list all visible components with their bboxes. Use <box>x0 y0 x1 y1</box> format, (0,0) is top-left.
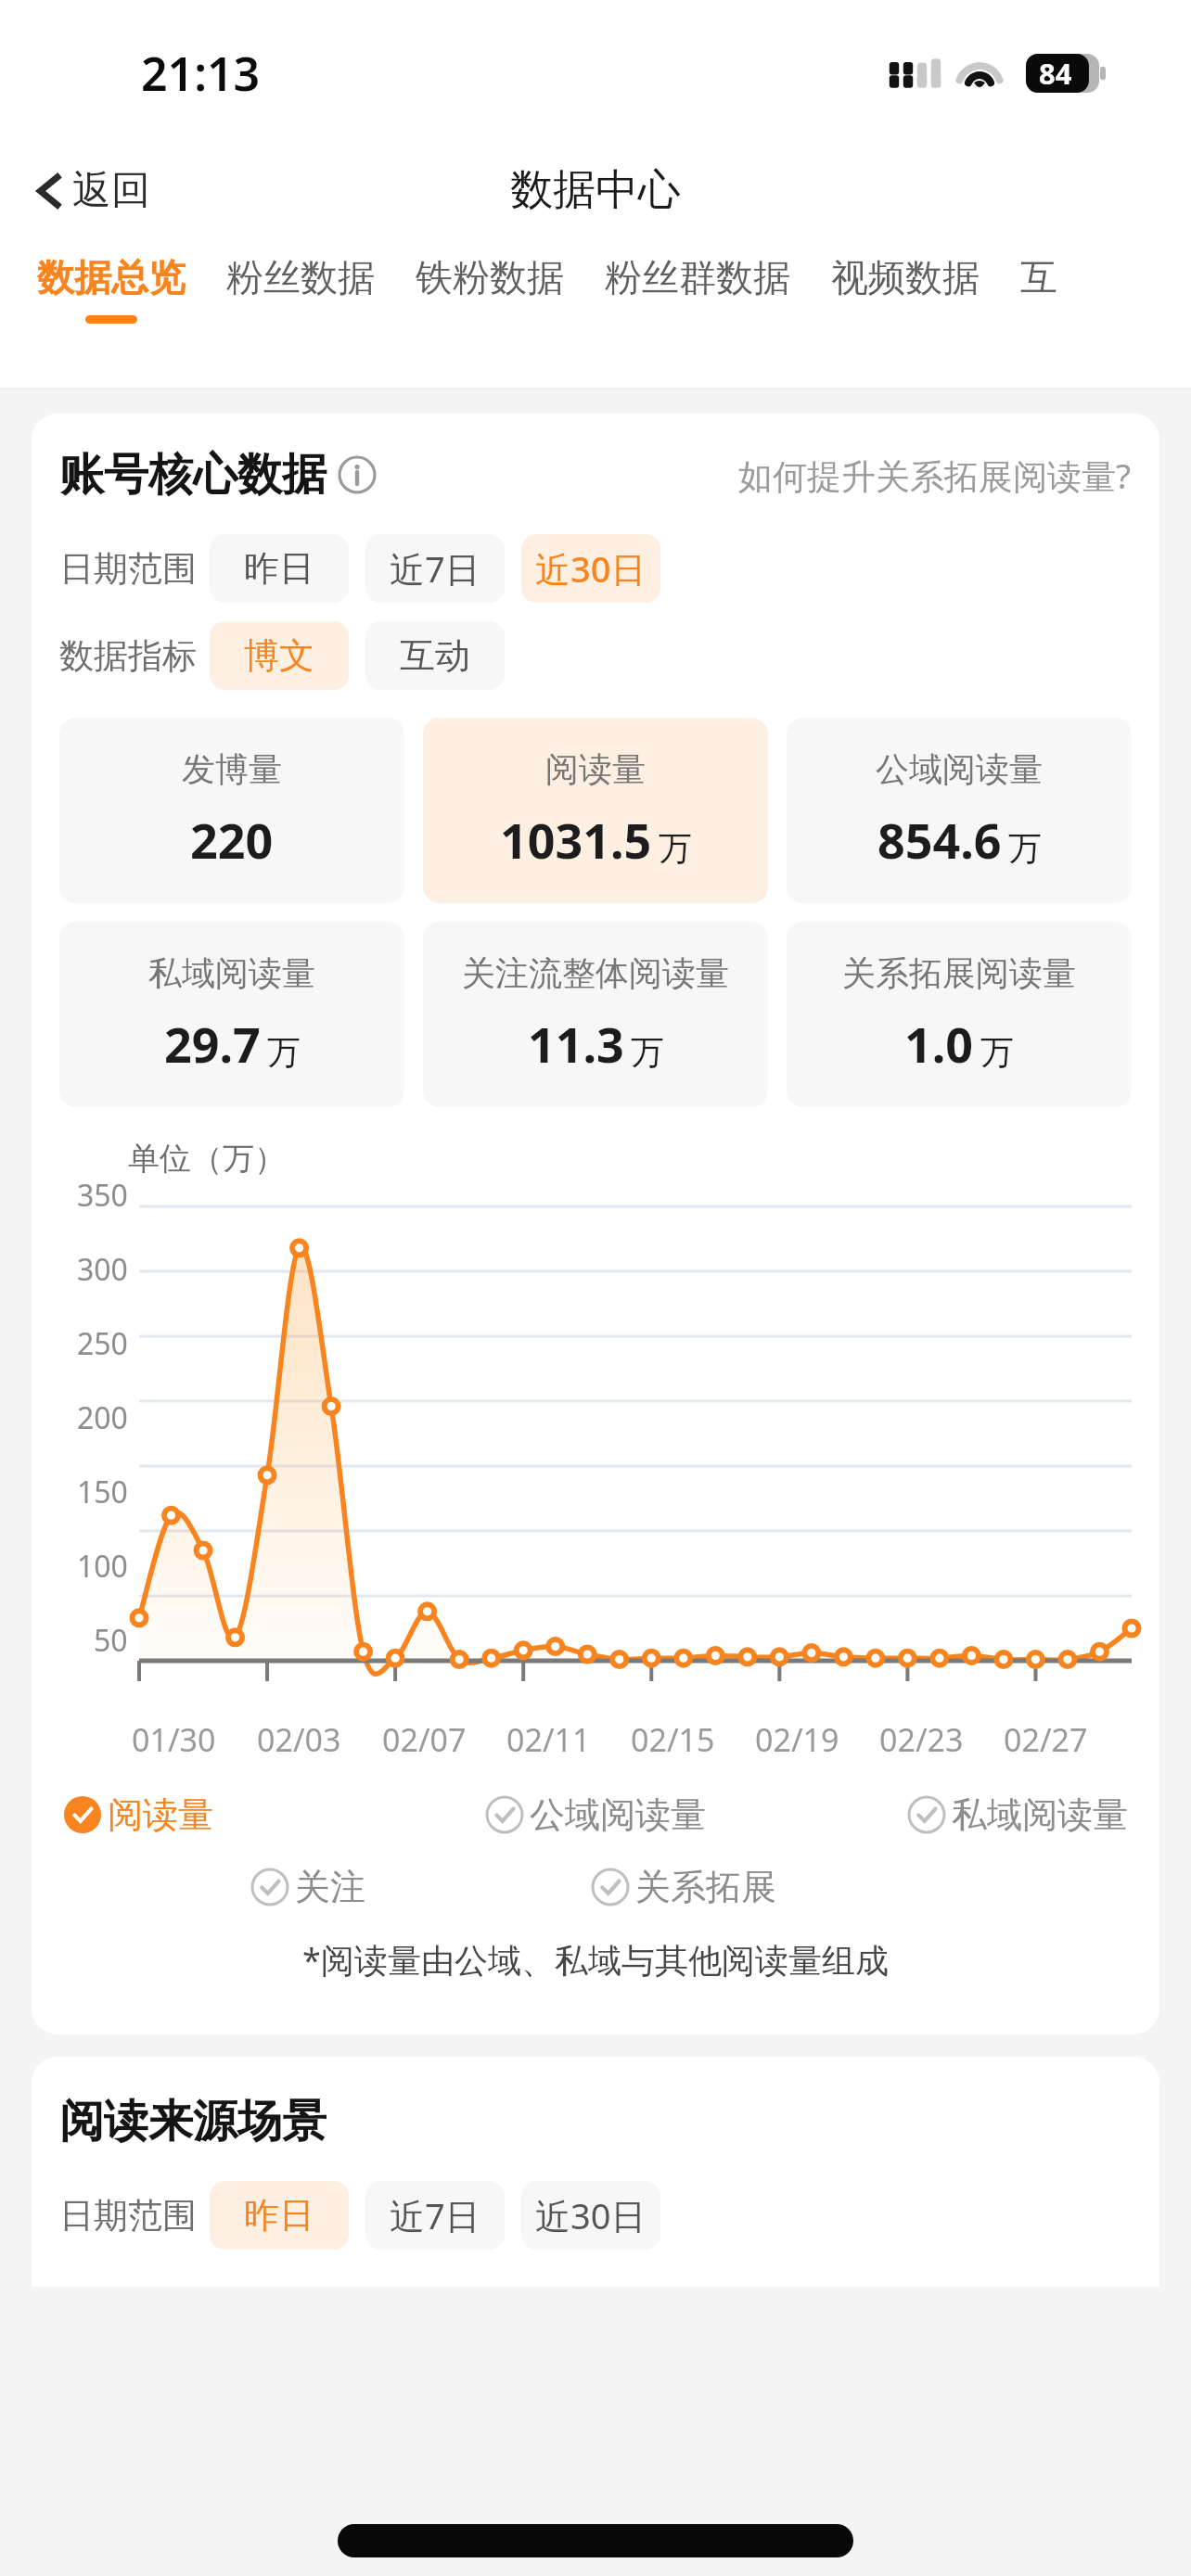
staticText: 关系拓展阅读量 <box>842 952 1076 994</box>
staticText: 1031.5 <box>500 807 652 873</box>
staticText: 单位（万） <box>128 1139 286 1179</box>
button[interactable]: 近7日 <box>365 534 505 603</box>
staticText: 21:13 <box>141 42 261 105</box>
staticText: 私域阅读量 <box>148 952 315 994</box>
button[interactable]: 近7日 <box>365 2181 505 2250</box>
staticText: *阅读量由公域、私域与其他阅读量组成 <box>59 1937 1132 1983</box>
staticText: 粉丝数据 <box>226 254 375 300</box>
staticText: 11.3 <box>528 1011 624 1077</box>
button[interactable]: 粉丝群数据 <box>584 241 811 315</box>
button[interactable]: 粉丝数据 <box>206 241 395 315</box>
staticText: 昨日 <box>244 2193 314 2238</box>
staticText: 01/30 <box>132 1718 216 1761</box>
staticText: 数据总览 <box>37 254 186 300</box>
button[interactable]: 关系拓展 <box>587 1861 780 1913</box>
button[interactable]: 关系拓展阅读量 <box>787 922 1132 1107</box>
staticText: 250 <box>77 1323 128 1364</box>
staticText: 互 <box>1020 254 1057 300</box>
staticText: 返回 <box>72 166 150 215</box>
button[interactable]: 公域阅读量 <box>787 718 1132 903</box>
staticText: 关注 <box>295 1865 365 1909</box>
staticText: 万 <box>267 1031 301 1073</box>
staticText: 铁粉数据 <box>416 254 564 300</box>
staticText: 互动 <box>400 633 470 678</box>
staticText: 公域阅读量 <box>530 1792 706 1837</box>
staticText: 84 <box>1039 54 1072 93</box>
staticText: 私域阅读量 <box>952 1792 1128 1837</box>
staticText: 29.7 <box>164 1011 261 1077</box>
staticText: 日期范围 <box>59 547 197 591</box>
staticText: 关注流整体阅读量 <box>462 952 729 994</box>
button[interactable]: 铁粉数据 <box>395 241 584 315</box>
staticText: 阅读来源场景 <box>59 2094 327 2149</box>
button[interactable]: 近30日 <box>521 2181 660 2250</box>
staticText: 02/07 <box>382 1718 467 1761</box>
staticText: 阅读量 <box>108 1792 213 1837</box>
staticText: 日期范围 <box>59 2194 197 2238</box>
staticText: 近7日 <box>390 2191 480 2239</box>
staticText: 350 <box>77 1175 128 1216</box>
button[interactable]: 博文 <box>210 621 349 690</box>
other: 说明 <box>338 455 377 494</box>
button[interactable]: 如何提升关系拓展阅读量? <box>738 452 1132 499</box>
staticText: 万 <box>980 1031 1014 1073</box>
button[interactable]: 近30日 <box>521 534 660 603</box>
staticText: 02/03 <box>257 1718 341 1761</box>
staticText: 数据中心 <box>510 163 681 217</box>
staticText: 博文 <box>244 633 314 678</box>
staticText: 粉丝群数据 <box>605 254 790 300</box>
staticText: 近7日 <box>390 544 480 593</box>
button[interactable]: 私域阅读量 <box>59 922 404 1107</box>
staticText: 02/11 <box>506 1718 591 1761</box>
button[interactable]: 昨日 <box>210 534 349 603</box>
button[interactable]: 阅读量 <box>59 1789 217 1841</box>
button[interactable]: 互动 <box>365 621 505 690</box>
staticText: 02/23 <box>879 1718 964 1761</box>
button[interactable]: 昨日 <box>210 2181 349 2250</box>
staticText: 关系拓展 <box>635 1865 776 1909</box>
button[interactable]: 账号核心数据 <box>59 447 377 503</box>
staticText: 阅读量 <box>545 748 646 790</box>
button[interactable]: 私域阅读量 <box>903 1789 1132 1841</box>
staticText: 1.0 <box>904 1011 974 1077</box>
button[interactable]: 数据总览 <box>17 241 206 324</box>
staticText: 万 <box>659 827 692 869</box>
staticText: 视频数据 <box>831 254 980 300</box>
staticText: 近30日 <box>535 2191 647 2239</box>
button[interactable]: 互 <box>1000 241 1078 315</box>
staticText: 数据指标 <box>59 634 197 678</box>
button[interactable]: 关注流整体阅读量 <box>423 922 768 1107</box>
staticText: 如何提升关系拓展阅读量? <box>738 452 1132 499</box>
button[interactable]: 公域阅读量 <box>481 1789 710 1841</box>
button[interactable]: 视频数据 <box>811 241 1000 315</box>
staticText: 发博量 <box>182 748 282 790</box>
staticText: 100 <box>77 1546 128 1587</box>
button[interactable]: 发博量 <box>59 718 404 903</box>
staticText: 昨日 <box>244 546 314 591</box>
staticText: 万 <box>631 1031 664 1073</box>
staticText: 02/19 <box>755 1718 839 1761</box>
staticText: 220 <box>190 807 274 873</box>
staticText: 万 <box>1008 827 1042 869</box>
button[interactable]: 阅读量 <box>423 718 768 903</box>
staticText: 近30日 <box>535 544 647 593</box>
button[interactable]: 返回 <box>22 157 161 224</box>
staticText: 02/15 <box>631 1718 715 1761</box>
staticText: 02/27 <box>1004 1718 1088 1761</box>
staticText: 854.6 <box>877 807 1002 873</box>
staticText: 300 <box>77 1249 128 1290</box>
staticText: 150 <box>77 1472 128 1512</box>
staticText: 公域阅读量 <box>876 748 1043 790</box>
staticText: 账号核心数据 <box>59 447 327 503</box>
button[interactable]: 关注 <box>247 1861 369 1913</box>
staticText: 50 <box>94 1620 128 1661</box>
staticText: 200 <box>77 1397 128 1438</box>
